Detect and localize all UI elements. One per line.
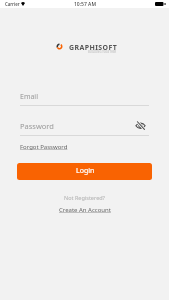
staticText: Password bbox=[20, 121, 54, 131]
other: Wi-Fi bbox=[21, 2, 25, 6]
staticText: Carrier bbox=[5, 1, 20, 7]
button[interactable]: Create An Account bbox=[59, 206, 111, 214]
button[interactable]: Forgot Password bbox=[20, 143, 68, 151]
staticText: Email bbox=[20, 92, 38, 102]
button[interactable]: Password bbox=[20, 121, 54, 131]
staticText: Forgot Password bbox=[20, 143, 68, 151]
staticText: GRAPHISOFT bbox=[69, 43, 118, 53]
button[interactable]: Show password bbox=[135, 120, 146, 131]
staticText: BUILDING TOGETHER bbox=[88, 50, 117, 54]
button[interactable]: Email bbox=[20, 92, 38, 102]
staticText: Login bbox=[76, 166, 95, 176]
other: Battery full bbox=[155, 2, 165, 6]
button[interactable]: Login bbox=[17, 163, 152, 180]
staticText: 10:57 AM bbox=[74, 1, 96, 8]
staticText: Not Registered? bbox=[64, 194, 106, 201]
